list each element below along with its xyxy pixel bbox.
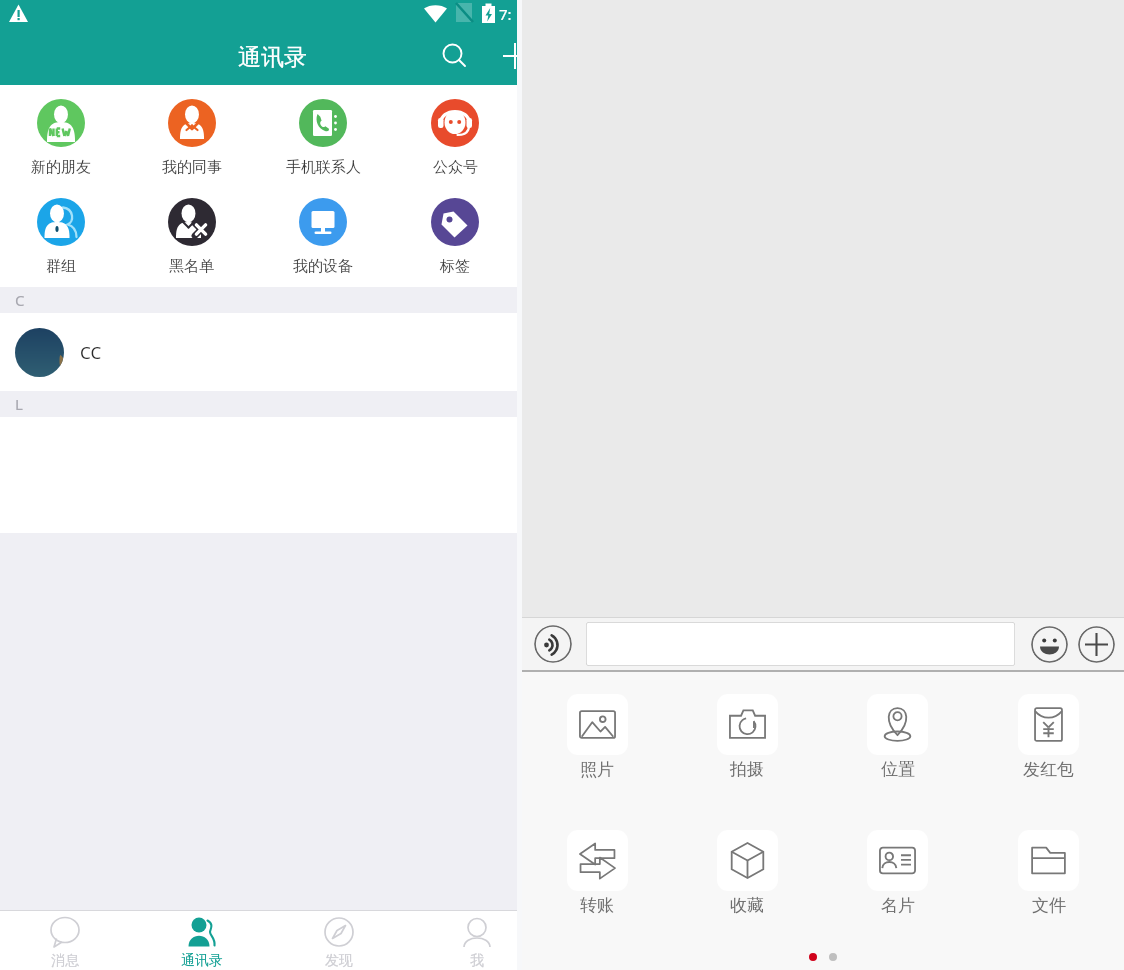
button[interactable]: Voice message [534,625,572,663]
staticText: 标签 [440,257,470,276]
button[interactable]: Add [492,34,538,80]
staticText: 名片 [881,895,915,916]
staticText: 公众号 [433,158,478,177]
staticText: 位置 [881,759,915,780]
staticText: 拍摄 [730,759,764,780]
button[interactable]: More [1078,626,1115,663]
staticText: 发现 [325,952,353,970]
button[interactable]: 收藏 [672,808,822,944]
button[interactable]: 文件 [973,808,1124,944]
button[interactable]: Page 1 [809,953,817,961]
staticText: 转账 [580,895,614,916]
button[interactable]: 黑名单 [126,184,257,283]
staticText: 我 [470,952,484,970]
button[interactable]: Search [432,33,478,79]
button[interactable]: 位置 [822,672,973,808]
staticText: 照片 [580,759,614,780]
staticText: 新的朋友 [31,158,91,177]
button[interactable]: 拍摄 [672,672,822,808]
button[interactable]: 名片 [822,808,973,944]
staticText: 手机联系人 [286,158,361,177]
staticText: 7: [499,4,512,24]
staticText: 通讯录 [181,952,223,970]
button[interactable]: 公众号 [389,85,521,184]
button[interactable]: 我 [408,911,545,970]
staticText: 我的同事 [162,158,222,177]
button[interactable]: 手机联系人 [257,85,389,184]
button[interactable]: 群组 [0,184,126,283]
staticText: 发红包 [1023,759,1074,780]
button[interactable]: 照片 [522,672,672,808]
staticText: 黑名单 [169,257,214,276]
button[interactable]: Emoji [1031,626,1068,663]
staticText: L [15,394,23,414]
button[interactable]: 转账 [522,808,672,944]
button[interactable]: 消息 [0,911,133,970]
button[interactable]: 我的同事 [126,85,257,184]
staticText: 通讯录 [238,43,307,72]
button[interactable]: 标签 [389,184,521,283]
staticText: 收藏 [730,895,764,916]
button[interactable]: 新的朋友 [0,85,126,184]
button[interactable]: Page 2 [829,953,837,961]
staticText: 我的设备 [293,257,353,276]
button[interactable]: 发现 [270,911,407,970]
button[interactable]: 通讯录 [133,911,270,970]
staticText: 群组 [46,257,76,276]
button[interactable]: 我的设备 [257,184,389,283]
button[interactable]: CC [0,313,517,391]
staticText: 消息 [51,952,79,970]
staticText: 文件 [1032,895,1066,916]
button[interactable]: Message input [586,622,1015,666]
staticText: CC [80,341,102,364]
button[interactable]: 发红包 [973,672,1124,808]
staticText: C [15,290,25,310]
